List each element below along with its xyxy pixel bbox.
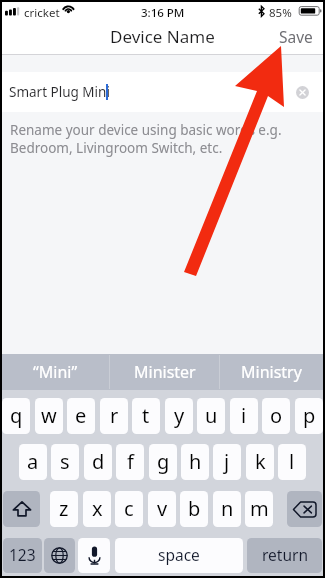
staticText: u bbox=[205, 402, 218, 429]
button[interactable]: Change keyboard bbox=[44, 538, 75, 573]
staticText: Save bbox=[279, 26, 313, 47]
button[interactable]: m bbox=[245, 491, 273, 527]
button[interactable]: c bbox=[115, 491, 143, 527]
staticText: Device Name bbox=[110, 25, 215, 48]
staticText: j bbox=[224, 448, 230, 475]
button[interactable]: i bbox=[230, 398, 258, 434]
staticText: 123 bbox=[9, 544, 36, 565]
staticText: m bbox=[250, 495, 269, 522]
button[interactable]: f bbox=[116, 444, 144, 480]
staticText: 85% bbox=[269, 5, 292, 21]
staticText: Minister bbox=[134, 361, 196, 383]
staticText: i bbox=[241, 402, 247, 429]
staticText: v bbox=[157, 495, 168, 522]
button[interactable]: h bbox=[181, 444, 209, 480]
button[interactable]: q bbox=[2, 398, 30, 434]
button[interactable]: n bbox=[213, 491, 241, 527]
button[interactable]: Minister bbox=[110, 354, 219, 390]
staticText: Smart Plug Mini bbox=[9, 83, 110, 101]
button[interactable]: t bbox=[132, 398, 160, 434]
staticText: g bbox=[157, 448, 170, 475]
staticText: e bbox=[75, 402, 87, 429]
staticText: k bbox=[255, 448, 266, 475]
staticText: a bbox=[27, 448, 39, 475]
staticText: l bbox=[289, 448, 295, 475]
button[interactable]: u bbox=[197, 398, 225, 434]
button[interactable]: Ministry bbox=[220, 354, 323, 390]
staticText: r bbox=[110, 402, 119, 429]
staticText: h bbox=[189, 448, 202, 475]
staticText: y bbox=[174, 402, 185, 429]
button[interactable]: y bbox=[165, 398, 193, 434]
button[interactable]: w bbox=[35, 398, 63, 434]
staticText: z bbox=[59, 495, 69, 522]
button[interactable]: Clear text bbox=[296, 86, 309, 99]
staticText: space bbox=[158, 544, 200, 565]
staticText: Rename your device using basic words e.g… bbox=[10, 121, 282, 157]
staticText: Ministry bbox=[241, 361, 302, 383]
button[interactable]: Dictate bbox=[78, 538, 110, 573]
button[interactable]: Backspace bbox=[287, 491, 322, 527]
button[interactable]: k bbox=[246, 444, 274, 480]
staticText: n bbox=[221, 495, 234, 522]
staticText: s bbox=[60, 448, 70, 475]
button[interactable]: a bbox=[19, 444, 47, 480]
staticText: “Mini” bbox=[33, 361, 78, 383]
staticText: t bbox=[142, 402, 150, 429]
button[interactable]: b bbox=[180, 491, 208, 527]
staticText: cricket bbox=[24, 5, 60, 21]
button[interactable]: r bbox=[100, 398, 128, 434]
button[interactable]: l bbox=[278, 444, 306, 480]
staticText: c bbox=[124, 495, 134, 522]
staticText: o bbox=[270, 402, 283, 429]
button[interactable]: s bbox=[51, 444, 79, 480]
button[interactable]: space bbox=[115, 538, 243, 573]
button[interactable]: p bbox=[295, 398, 323, 434]
staticText: b bbox=[188, 495, 201, 522]
button[interactable]: z bbox=[50, 491, 78, 527]
button[interactable]: j bbox=[213, 444, 241, 480]
staticText: x bbox=[92, 495, 103, 522]
button[interactable]: Save bbox=[269, 20, 323, 53]
staticText: 3:16 PM bbox=[141, 5, 185, 21]
button[interactable]: g bbox=[149, 444, 177, 480]
button[interactable]: v bbox=[148, 491, 176, 527]
staticText: f bbox=[127, 448, 134, 475]
staticText: w bbox=[41, 402, 57, 429]
button[interactable]: d bbox=[84, 444, 112, 480]
button[interactable]: Shift bbox=[3, 491, 40, 527]
button[interactable]: e bbox=[67, 398, 95, 434]
staticText: p bbox=[303, 402, 316, 429]
button[interactable]: 123 bbox=[3, 538, 42, 573]
staticText: d bbox=[92, 448, 105, 475]
button[interactable]: x bbox=[83, 491, 111, 527]
button[interactable]: return bbox=[247, 538, 322, 573]
button[interactable]: “Mini” bbox=[2, 354, 109, 390]
staticText: q bbox=[10, 402, 23, 429]
staticText: return bbox=[262, 544, 308, 565]
button[interactable]: o bbox=[262, 398, 290, 434]
